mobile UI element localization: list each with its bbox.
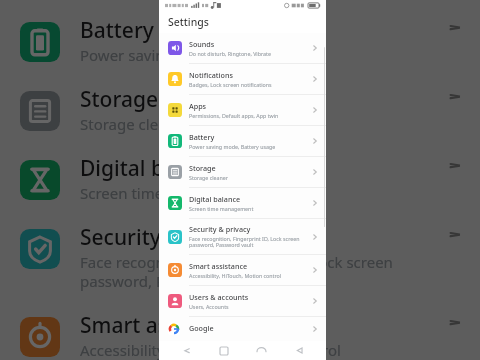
staticText: Screen time management [189,205,254,212]
button[interactable]: Users & accounts [159,286,326,317]
staticText: Smart assistance [80,311,250,340]
button[interactable]: Recents [214,341,234,360]
staticText: Security & privacy [189,224,251,234]
staticText: Permissions, Default apps, App twin [189,112,279,119]
button[interactable]: Notifications [159,64,326,95]
staticText: Screen time management [80,183,263,203]
staticText: Settings [168,15,209,29]
staticText: Storage [80,85,158,114]
staticText: Face recognition, Fingerprint ID, Lock s… [189,235,300,249]
staticText: Storage cleaner [189,174,229,181]
staticText: Smart assistance [189,261,248,271]
staticText: Digital balance [80,154,230,183]
staticText: Accessibility, HiTouch, Motion control [189,272,282,279]
staticText: Accessibility, HiTouch, Motion control [80,340,341,360]
staticText: Users, Accounts [189,303,229,310]
staticText: Notifications [189,70,233,80]
staticText: Do not disturb, Ringtone, Vibrate [189,50,271,57]
button[interactable]: Digital balance [159,188,326,219]
button[interactable]: Security & privacy [159,219,326,255]
button[interactable]: Hide navigation bar [289,341,309,360]
staticText: Sounds [189,39,215,49]
staticText: Storage cleaner [80,114,191,134]
staticText: Security & privacy [80,223,260,252]
staticText: Users & accounts [189,292,249,302]
staticText: Face recognition, Fingerprint ID, Lock s… [80,252,393,291]
staticText: Power saving mode, Battery usage [189,143,276,150]
button[interactable]: Apps [159,95,326,126]
button[interactable]: Battery [159,126,326,157]
staticText: Apps [189,101,207,111]
button[interactable]: Smart assistance [159,255,326,286]
button[interactable]: Google [159,317,326,341]
staticText: Battery [189,132,215,142]
button[interactable]: Back [176,341,196,360]
button[interactable]: Sounds [159,33,326,64]
button[interactable]: Home [251,341,271,360]
button[interactable]: Storage [159,157,326,188]
staticText: Google [189,323,214,333]
staticText: Digital balance [189,194,241,204]
staticText: Power saving mode, Battery usage [80,45,325,65]
staticText: Badges, Lock screen notifications [189,81,272,88]
staticText: Battery [80,16,154,45]
staticText: Storage [189,163,216,173]
